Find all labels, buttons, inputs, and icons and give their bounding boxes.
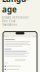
staticText: Instant Definitions · One Click xyxy=(2,16,30,23)
staticText: Translations xyxy=(2,23,17,26)
button[interactable]: Translation result xyxy=(5,64,35,68)
button[interactable]: Translation result xyxy=(5,68,35,71)
staticText: Language xyxy=(2,0,29,15)
